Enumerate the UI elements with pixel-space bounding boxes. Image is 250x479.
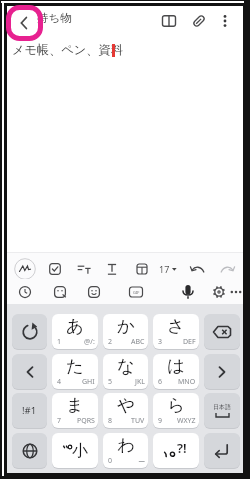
button[interactable]: ?! [153,433,199,468]
button[interactable] [10,9,38,37]
button[interactable] [186,9,212,33]
staticText: JKL [135,377,145,387]
staticText: ?! [177,439,187,457]
staticText: GHI [82,377,95,387]
button[interactable]: あ [52,314,98,349]
button[interactable] [13,257,37,281]
staticText: WXYZ [177,416,196,426]
button[interactable] [204,354,240,389]
staticText: DEF [183,337,196,347]
staticText: 持ち物 [37,11,72,25]
staticText: 小 [72,441,88,461]
staticText: 2 [108,337,113,347]
button[interactable] [12,314,47,349]
staticText: TUV [131,416,145,426]
button[interactable]: !#1 [12,393,47,428]
button[interactable] [156,9,182,33]
button[interactable]: 17 [153,257,184,281]
button[interactable]: さ [153,314,199,349]
button[interactable]: た [52,354,98,389]
button[interactable] [214,257,240,281]
button[interactable]: か [103,314,148,349]
staticText: ま [66,394,84,416]
button[interactable] [206,280,232,304]
button[interactable] [99,257,125,281]
staticText: さ [167,315,185,337]
staticText: GIF [133,290,140,295]
button[interactable] [81,280,107,304]
staticText: ー [138,457,145,466]
button[interactable] [71,257,97,281]
button[interactable]: わ [103,433,148,468]
button[interactable]: 小 [52,433,98,468]
staticText: 0 [108,456,113,466]
button[interactable] [204,433,240,468]
staticText: 6 [158,377,163,387]
button[interactable]: 日本語 [204,393,240,428]
staticText: は [167,355,185,377]
staticText: ら [167,394,185,416]
button[interactable]: は [153,354,199,389]
button[interactable] [215,9,235,33]
staticText: な [117,355,135,377]
staticText: PQRS [77,416,95,426]
button[interactable] [204,314,240,349]
staticText: 9 [158,416,163,426]
staticText: MNO [178,377,196,387]
button[interactable] [226,280,246,304]
button[interactable] [47,280,73,304]
button[interactable] [12,433,47,468]
staticText: 8 [108,416,113,426]
staticText: 3 [158,337,163,347]
button[interactable] [129,257,155,281]
staticText: ABC [131,337,145,347]
staticText: か [117,315,135,337]
button[interactable] [12,354,47,389]
button[interactable]: ま [52,393,98,428]
staticText: 1 [57,337,62,347]
staticText: や [117,394,135,416]
staticText: わ [117,434,135,456]
button[interactable]: や [103,393,148,428]
button[interactable]: ら [153,393,199,428]
staticText: 7 [57,416,62,426]
staticText: !#1 [22,404,37,417]
staticText: @/: [84,337,95,347]
staticText: 日本語 [213,403,231,411]
button[interactable] [12,280,38,304]
staticText: 17 [159,263,170,275]
staticText: た [66,355,84,377]
staticText: メモ帳、ペン、資料 [12,42,123,57]
button[interactable]: な [103,354,148,389]
staticText: 4 [57,377,62,387]
button[interactable] [175,280,201,304]
button[interactable] [42,257,68,281]
staticText: 5 [108,377,113,387]
button[interactable] [185,257,211,281]
button[interactable]: GIF [123,280,149,304]
staticText: あ [66,315,84,337]
